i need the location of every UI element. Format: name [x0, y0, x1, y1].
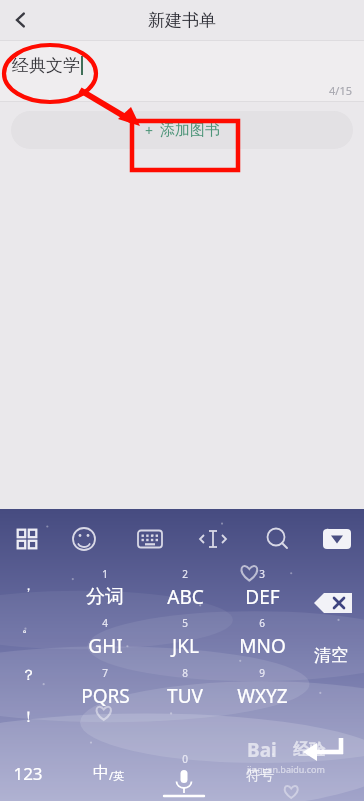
staticText: ，: [22, 577, 35, 593]
staticText: 添加图书: [160, 121, 220, 140]
staticText: 9: [259, 666, 265, 680]
button[interactable]: ABC: [151, 580, 219, 614]
staticText: 1: [102, 567, 108, 581]
staticText: PQRS: [81, 683, 130, 709]
staticText: WXYZ: [237, 683, 288, 709]
staticText: 2: [182, 567, 188, 581]
staticText: 经典文学: [12, 55, 80, 76]
staticText: 4/15: [329, 83, 352, 98]
button[interactable]: 123: [0, 756, 62, 790]
button[interactable]: Menu: [5, 517, 49, 561]
button[interactable]: Enter: [298, 727, 358, 777]
staticText: GHI: [88, 633, 123, 659]
staticText: 123: [13, 762, 43, 785]
staticText: 中: [93, 763, 109, 783]
staticText: DEF: [245, 584, 280, 610]
staticText: 分词: [86, 585, 124, 609]
button[interactable]: Move cursor: [191, 517, 235, 561]
staticText: jingyan.baidu.com: [247, 763, 325, 775]
button[interactable]: +: [11, 111, 353, 149]
staticText: 。: [22, 619, 35, 635]
button[interactable]: Search: [255, 517, 299, 561]
staticText: MNO: [239, 633, 286, 659]
button[interactable]: JKL: [151, 629, 219, 663]
staticText: 3: [259, 567, 265, 581]
button[interactable]: Delete: [306, 583, 360, 623]
staticText: ！: [21, 708, 36, 727]
button[interactable]: ？: [0, 658, 62, 692]
button[interactable]: DEF: [228, 580, 296, 614]
button[interactable]: 中: [74, 757, 144, 789]
button[interactable]: Back: [0, 0, 42, 40]
staticText: 8: [182, 666, 188, 680]
staticText: 清空: [314, 645, 348, 666]
button[interactable]: ！: [0, 700, 62, 734]
button[interactable]: Hide keyboard: [315, 517, 359, 561]
staticText: 6: [259, 616, 265, 630]
staticText: +: [145, 121, 154, 140]
staticText: /英: [109, 768, 125, 783]
staticText: ABC: [167, 584, 204, 610]
staticText: 7: [102, 666, 108, 680]
button[interactable]: ，: [0, 568, 62, 602]
staticText: 符号: [246, 767, 274, 785]
button[interactable]: Keyboard layout: [128, 517, 172, 561]
button[interactable]: TUV: [151, 679, 219, 713]
button[interactable]: Emoji: [62, 517, 106, 561]
staticText: 4: [102, 616, 108, 630]
staticText: 5: [182, 616, 188, 630]
button[interactable]: GHI: [71, 629, 139, 663]
staticText: ？: [21, 666, 36, 685]
button[interactable]: PQRS: [71, 679, 139, 713]
button[interactable]: Voice input: [158, 761, 212, 801]
button[interactable]: 清空: [297, 638, 364, 672]
button[interactable]: MNO: [228, 629, 296, 663]
button[interactable]: WXYZ: [228, 679, 296, 713]
staticText: TUV: [167, 683, 203, 709]
staticText: 新建书单: [148, 10, 216, 31]
staticText: 0: [182, 752, 188, 766]
button[interactable]: 。: [0, 610, 62, 644]
staticText: Bai: [247, 737, 277, 763]
staticText: 经验: [293, 740, 325, 760]
button[interactable]: 分词: [71, 580, 139, 614]
staticText: JKL: [172, 633, 199, 659]
